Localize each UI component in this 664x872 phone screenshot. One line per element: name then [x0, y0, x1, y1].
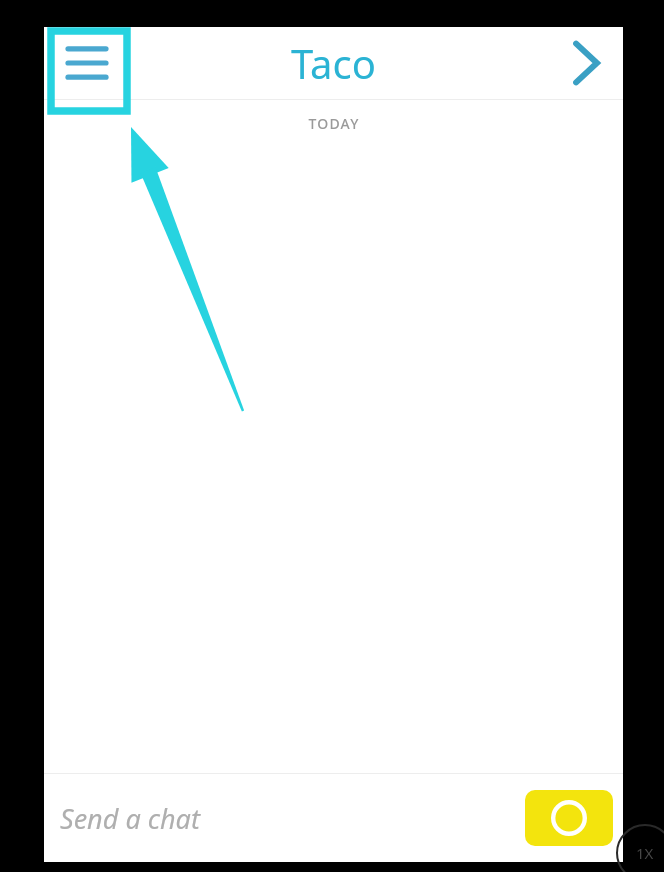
button[interactable]: Open conversation — [549, 27, 623, 99]
button[interactable]: Send a chat — [44, 774, 525, 862]
staticText: TODAY — [308, 114, 360, 133]
staticText: 1X — [636, 843, 654, 863]
button[interactable]: Open camera — [525, 790, 613, 846]
staticText: Send a chat — [60, 800, 200, 837]
button[interactable]: Menu — [44, 27, 130, 99]
staticText: Taco — [291, 36, 376, 90]
button[interactable]: Taco — [291, 36, 376, 90]
